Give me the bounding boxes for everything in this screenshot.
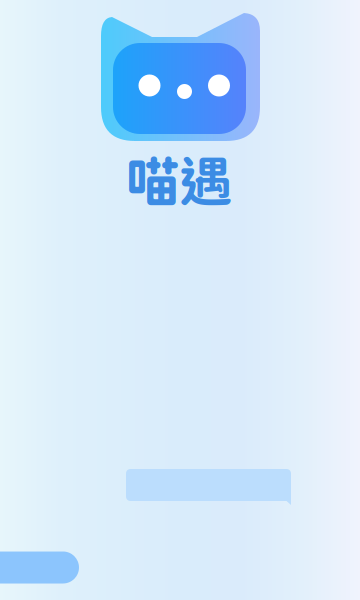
staticText: 喵遇: [126, 149, 232, 212]
